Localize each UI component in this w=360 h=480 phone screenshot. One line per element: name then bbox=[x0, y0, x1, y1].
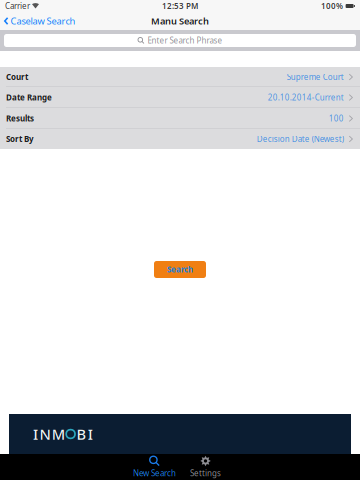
staticText: Supreme Court bbox=[287, 72, 344, 82]
button[interactable]: New Search bbox=[129, 454, 180, 480]
button[interactable]: Date Range bbox=[0, 87, 360, 108]
staticText: 100 bbox=[329, 113, 344, 124]
button[interactable]: Search bbox=[154, 261, 206, 278]
staticText: New Search bbox=[133, 468, 176, 478]
staticText: N bbox=[39, 424, 50, 444]
staticText: 12:53 PM bbox=[162, 1, 198, 11]
button[interactable]: Sort By bbox=[0, 129, 360, 149]
button[interactable]: Enter Search Phrase bbox=[4, 34, 356, 47]
staticText: Sort By bbox=[6, 134, 34, 144]
staticText: B bbox=[76, 424, 86, 444]
staticText: M bbox=[52, 424, 65, 444]
staticText: I bbox=[88, 424, 93, 444]
staticText: Court bbox=[6, 72, 28, 82]
staticText: Manu Search bbox=[151, 15, 209, 27]
staticText: Enter Search Phrase bbox=[147, 35, 222, 46]
staticText: Settings bbox=[190, 468, 221, 478]
staticText: Date Range bbox=[6, 92, 52, 103]
staticText: 20.10.2014-Current bbox=[268, 92, 344, 103]
button[interactable]: Caselaw Search bbox=[0, 12, 75, 30]
staticText bbox=[30, 1, 32, 11]
staticText: 100% bbox=[321, 1, 343, 11]
button[interactable]: Results bbox=[0, 108, 360, 129]
staticText: I bbox=[33, 424, 38, 444]
staticText: Carrier bbox=[5, 1, 30, 11]
staticText: Search bbox=[167, 264, 193, 275]
button[interactable]: Court bbox=[0, 67, 360, 87]
button[interactable]: Settings bbox=[180, 454, 231, 480]
staticText: Decision Date (Newest) bbox=[257, 134, 344, 144]
staticText: Caselaw Search bbox=[10, 15, 75, 27]
staticText: Results bbox=[6, 113, 34, 124]
